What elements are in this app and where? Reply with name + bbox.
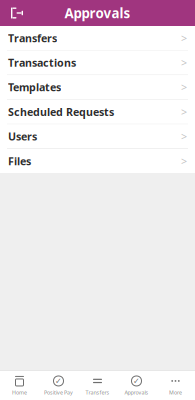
- staticText: Scheduled Requests: [8, 105, 114, 119]
- staticText: Templates: [8, 80, 61, 94]
- staticText: ✓: [133, 376, 140, 385]
- staticText: Transfers: [85, 389, 109, 396]
- button[interactable]: Home: [0, 371, 39, 400]
- staticText: Positive Pay: [44, 389, 73, 396]
- staticText: >: [181, 31, 187, 45]
- button[interactable]: ✓: [117, 371, 156, 400]
- button[interactable]: ✓: [39, 371, 78, 400]
- staticText: More: [169, 389, 182, 396]
- staticText: Files: [8, 154, 31, 168]
- staticText: Transfers: [8, 31, 57, 45]
- button[interactable]: Transfers: [78, 371, 117, 400]
- staticText: >: [181, 129, 187, 143]
- staticText: ✓: [55, 376, 62, 385]
- staticText: >: [181, 105, 187, 119]
- button[interactable]: Files: [0, 149, 195, 173]
- staticText: >: [181, 80, 187, 94]
- staticText: Approvals: [124, 389, 148, 396]
- button[interactable]: Templates: [0, 75, 195, 99]
- button[interactable]: More: [156, 371, 195, 400]
- staticText: >: [181, 154, 187, 168]
- staticText: Home: [12, 389, 27, 396]
- button[interactable]: Users: [0, 124, 195, 148]
- staticText: >: [181, 55, 187, 70]
- button[interactable]: Scheduled Requests: [0, 100, 195, 124]
- button[interactable]: Transfers: [0, 26, 195, 50]
- button[interactable]: Transactions: [0, 51, 195, 75]
- staticText: Users: [8, 129, 37, 143]
- staticText: Approvals: [64, 4, 130, 22]
- button[interactable]: Sign out: [4, 0, 30, 26]
- staticText: Transactions: [8, 55, 76, 70]
